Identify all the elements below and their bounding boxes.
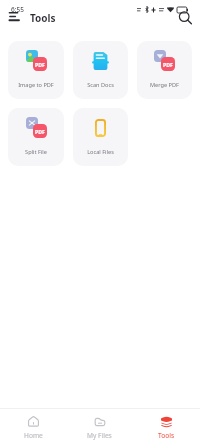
button[interactable]: Local Files	[73, 108, 128, 166]
staticText: PDF	[163, 61, 173, 68]
button[interactable]: Tools	[133, 409, 200, 446]
button[interactable]: PDF	[8, 108, 64, 166]
staticText: My Files	[87, 431, 112, 440]
staticText: PDF	[35, 128, 45, 135]
staticText: 6:55	[11, 5, 24, 14]
button[interactable]: Search	[176, 12, 194, 23]
staticText: Tools	[158, 431, 175, 440]
button[interactable]: Scan Docs	[73, 41, 128, 99]
button[interactable]: PDF	[8, 41, 64, 99]
staticText: PDF	[35, 61, 45, 68]
button[interactable]: PDF	[137, 41, 192, 99]
staticText: Image to PDF	[18, 81, 54, 89]
staticText: Split File	[25, 148, 47, 156]
button[interactable]: My Files	[66, 409, 133, 446]
button[interactable]: Home	[0, 409, 66, 446]
staticText: Scan Docs	[87, 81, 114, 89]
staticText: Local Files	[87, 148, 114, 156]
staticText: Tools	[30, 11, 56, 22]
staticText: Home	[24, 431, 43, 440]
staticText: Merge PDF	[150, 81, 179, 89]
button[interactable]: Menu	[5, 11, 23, 22]
